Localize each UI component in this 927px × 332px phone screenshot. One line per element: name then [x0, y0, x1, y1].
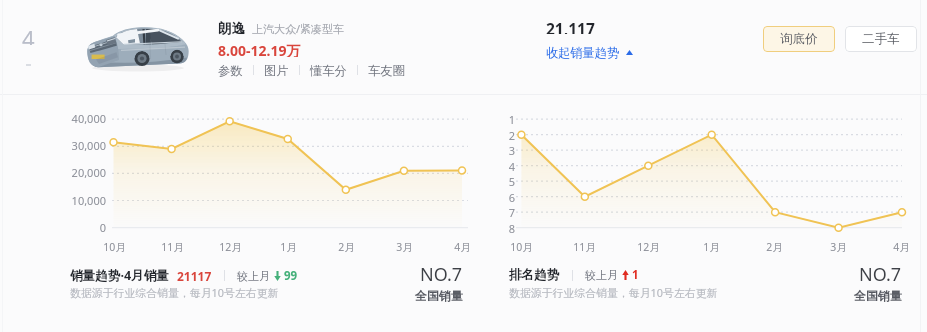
button[interactable]: 询底价	[763, 26, 835, 52]
staticText: 2月	[766, 240, 783, 254]
staticText: 40,000	[71, 111, 106, 126]
staticText: 二手车	[862, 31, 900, 47]
staticText: 10月	[510, 240, 533, 254]
staticText: 1月	[280, 240, 297, 254]
staticText: NO.7	[420, 262, 463, 287]
button[interactable]: 懂车分	[310, 63, 347, 78]
button[interactable]: Car photo	[84, 22, 192, 72]
staticText: 20,000	[71, 165, 106, 180]
staticText: 3月	[396, 240, 413, 254]
staticText: 30,000	[71, 138, 106, 153]
staticText: 12月	[637, 240, 660, 254]
staticText: 11月	[161, 240, 184, 254]
staticText: 2月	[338, 240, 355, 254]
button[interactable]: 收起销量趋势	[546, 44, 633, 60]
staticText: 4	[22, 23, 35, 45]
staticText: 上汽大众/紧凑型车	[252, 21, 345, 36]
button[interactable]: 二手车	[845, 26, 917, 52]
staticText: 21117	[177, 268, 212, 284]
staticText: 4月	[454, 240, 471, 254]
staticText: 4	[508, 159, 515, 174]
staticText: 7	[508, 205, 515, 220]
staticText: 10月	[103, 240, 126, 254]
staticText: 1	[632, 267, 639, 283]
staticText: 询底价	[780, 31, 818, 47]
staticText: 数据源于行业综合销量，每月10号左右更新	[70, 285, 279, 300]
staticText: 收起销量趋势	[546, 45, 620, 60]
staticText: 1	[508, 112, 515, 127]
staticText: 0	[99, 220, 106, 235]
staticText: 8	[508, 221, 515, 236]
staticText: 3	[508, 143, 515, 158]
button[interactable]: 图片	[264, 63, 289, 78]
staticText: 99	[284, 268, 298, 284]
button[interactable]: 车友圈	[368, 63, 405, 78]
staticText: 6	[508, 190, 515, 205]
staticText: 4月	[893, 240, 910, 254]
staticText: 全国销量	[415, 288, 463, 303]
button[interactable]: 参数	[218, 63, 243, 78]
staticText: 较上月	[237, 269, 270, 283]
staticText: 1月	[703, 240, 720, 254]
staticText: 数据源于行业综合销量，每月10号左右更新	[509, 285, 718, 300]
staticText: 排名趋势	[509, 267, 560, 283]
staticText: 5	[508, 174, 515, 189]
staticText: 10,000	[71, 193, 106, 208]
staticText: 较上月	[585, 268, 618, 282]
staticText: 朗逸	[218, 20, 245, 36]
staticText: 全国销量	[854, 288, 902, 303]
staticText: 3月	[830, 240, 847, 254]
staticText: NO.7	[859, 262, 902, 287]
staticText: 11月	[573, 240, 596, 254]
staticText: 8.00-12.19万	[218, 41, 301, 57]
staticText: 2	[508, 128, 515, 143]
staticText: 21,117	[546, 18, 595, 34]
staticText: 销量趋势·4月销量	[70, 267, 169, 284]
staticText: 12月	[219, 240, 242, 254]
